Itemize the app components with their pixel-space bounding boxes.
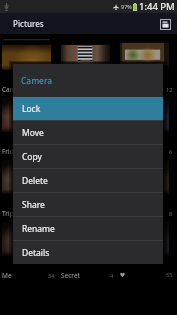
button[interactable]: Lock (13, 97, 163, 120)
staticText: Secret (61, 271, 80, 280)
staticText: Pictures (13, 18, 44, 29)
button[interactable]: Change view (158, 17, 172, 31)
button[interactable] (120, 98, 169, 132)
button[interactable] (2, 222, 51, 256)
staticText: 12 (166, 86, 173, 93)
staticText: 16 (48, 210, 55, 217)
button[interactable] (61, 36, 110, 70)
staticText: 6 (169, 148, 173, 155)
button[interactable]: Move (13, 121, 163, 144)
button[interactable]: Copy (13, 145, 163, 168)
staticText: 4 (110, 272, 114, 279)
button[interactable] (120, 36, 169, 70)
staticText: Me (2, 271, 12, 280)
button[interactable]: Rename (13, 217, 163, 240)
staticText: Rename (22, 223, 55, 235)
staticText: Copy (22, 151, 42, 163)
staticText: 55 (166, 271, 173, 278)
staticText: 34 (48, 272, 55, 279)
staticText: Camera (21, 75, 52, 87)
staticText: 45 (107, 210, 114, 217)
staticText: Lock (22, 103, 41, 115)
staticText: Camera (2, 85, 26, 94)
staticText: Delete (22, 175, 48, 187)
staticText: Trip (2, 209, 14, 218)
button[interactable] (120, 222, 169, 256)
button[interactable] (2, 36, 51, 70)
staticText: 8 (169, 210, 173, 217)
staticText: Details (22, 247, 50, 259)
button[interactable] (61, 160, 110, 194)
staticText: Move (22, 127, 44, 139)
staticText: Share (22, 199, 45, 211)
button[interactable]: Share (13, 193, 163, 216)
button[interactable] (61, 98, 110, 132)
button[interactable]: Delete (13, 169, 163, 192)
staticText: 1:44 PM (139, 0, 175, 13)
staticText: 97% (121, 3, 132, 10)
button[interactable]: Details (13, 241, 163, 264)
button[interactable] (2, 160, 51, 194)
button[interactable] (120, 160, 169, 194)
staticText: Friday (2, 147, 21, 156)
staticText: Work (61, 209, 78, 218)
button[interactable] (2, 98, 51, 132)
staticText: Pets (120, 209, 134, 218)
